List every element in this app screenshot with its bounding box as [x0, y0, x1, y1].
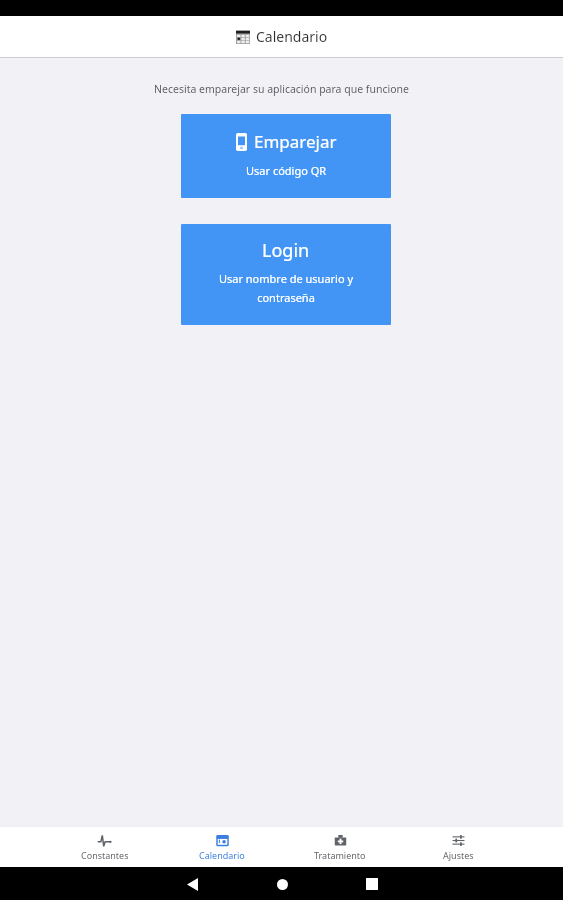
staticText: Ajustes — [443, 849, 474, 861]
button[interactable]: Tratamiento — [281, 827, 399, 867]
button[interactable]: Ajustes — [399, 827, 517, 867]
button[interactable]: Login — [181, 224, 391, 325]
staticText: Calendario — [199, 849, 245, 861]
button[interactable]: Home — [268, 870, 296, 898]
button[interactable]: Emparejar — [181, 114, 391, 198]
staticText: Login — [262, 238, 310, 263]
button[interactable]: Calendario — [163, 827, 281, 867]
button[interactable]: Recent apps — [358, 870, 386, 898]
staticText: Calendario — [256, 27, 328, 46]
button[interactable]: Constantes — [46, 827, 163, 867]
staticText: Usar código QR — [246, 163, 327, 178]
staticText: Necesita emparejar su aplicación para qu… — [154, 82, 409, 96]
staticText: Tratamiento — [314, 849, 366, 861]
staticText: Usar nombre de usuario y contraseña — [218, 271, 354, 305]
staticText: Constantes — [81, 849, 129, 861]
staticText: Emparejar — [254, 130, 337, 153]
button[interactable]: Back — [178, 870, 206, 898]
